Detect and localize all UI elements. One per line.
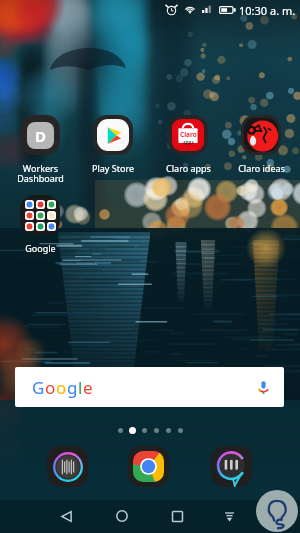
staticText: Claro: [180, 130, 197, 139]
button[interactable]: Play Store: [76, 115, 150, 174]
button[interactable]: D: [3, 115, 77, 185]
staticText: D: [35, 126, 46, 146]
button[interactable]: Back: [50, 500, 82, 532]
button[interactable]: Claro: [151, 115, 225, 174]
staticText: e: [83, 376, 93, 399]
staticText: o: [45, 376, 56, 399]
staticText: g: [67, 376, 78, 399]
staticText: l: [78, 376, 83, 399]
button[interactable]: Phone: [47, 446, 88, 487]
staticText: apps: [183, 139, 194, 145]
button[interactable]: G: [15, 367, 284, 407]
staticText: G: [32, 376, 45, 399]
staticText: Claro ideas: [238, 162, 285, 174]
button[interactable]: Google: [3, 195, 77, 254]
staticText: Play Store: [92, 162, 134, 174]
staticText: o: [56, 376, 67, 399]
button[interactable]: Messages: [211, 446, 252, 487]
staticText: Workers Dashboard: [17, 162, 64, 185]
staticText: 10:30 a. m.: [239, 3, 296, 18]
staticText: Google: [25, 242, 56, 254]
button[interactable]: Chrome: [128, 446, 169, 487]
button[interactable]: Claro ideas: [224, 115, 298, 174]
button[interactable]: Assistant: [256, 490, 298, 532]
button[interactable]: Recents: [161, 500, 193, 532]
other: Voice search: [256, 380, 271, 395]
staticText: Claro apps: [166, 162, 211, 174]
button[interactable]: Hide navigation bar: [213, 500, 245, 532]
button[interactable]: Home: [106, 500, 138, 532]
